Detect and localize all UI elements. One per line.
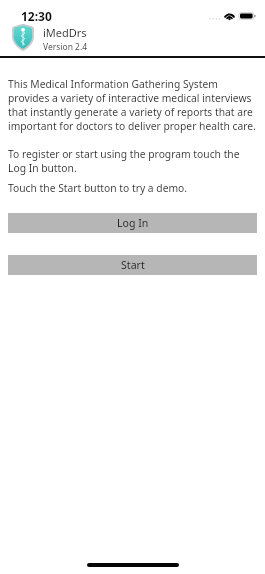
- staticText: 12:30: [21, 8, 52, 24]
- other: Home indicator: [87, 563, 179, 567]
- staticText: Touch the Start button to try a demo.: [8, 181, 188, 195]
- staticText: To register or start using the program t…: [8, 147, 257, 175]
- other: Cellular signal: [209, 12, 220, 20]
- staticText: This Medical Information Gathering Syste…: [8, 77, 257, 133]
- staticText: Version 2.4: [43, 41, 88, 53]
- staticText: Start: [121, 258, 145, 272]
- other: Battery: [239, 12, 256, 20]
- other: iMedDrs logo: [12, 24, 34, 51]
- button[interactable]: Log In: [8, 213, 257, 233]
- other: Wi-Fi: [224, 12, 235, 20]
- staticText: iMedDrs: [43, 25, 87, 40]
- button[interactable]: Start: [8, 255, 257, 275]
- staticText: Log In: [117, 216, 149, 230]
